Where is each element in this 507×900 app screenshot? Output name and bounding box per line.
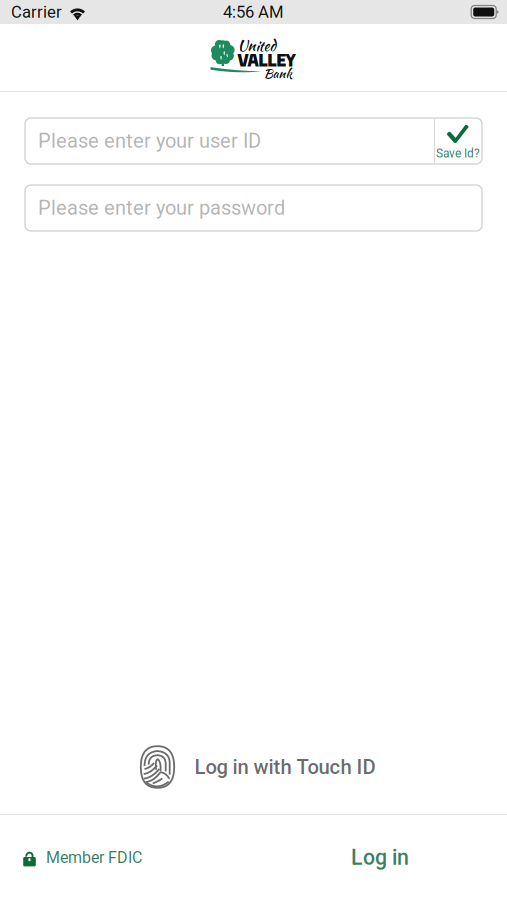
staticText: Save Id? [436, 146, 480, 161]
staticText: VALLEY [237, 49, 295, 70]
staticText: Please enter your user ID [38, 129, 261, 153]
staticText: Carrier [11, 2, 62, 22]
button[interactable]: Log in with Touch ID [139, 745, 375, 789]
button[interactable]: Log in [341, 839, 419, 876]
staticText: Log in with Touch ID [194, 755, 375, 779]
button[interactable]: Save Id? [434, 119, 482, 163]
staticText: Please enter your password [38, 196, 285, 220]
button[interactable]: Member FDIC [18, 842, 147, 873]
staticText: Log in [351, 845, 409, 870]
staticText: Member FDIC [46, 848, 142, 867]
staticText: United [237, 35, 275, 56]
staticText: Bank [263, 64, 292, 83]
staticText: 4:56 AM [223, 2, 284, 22]
